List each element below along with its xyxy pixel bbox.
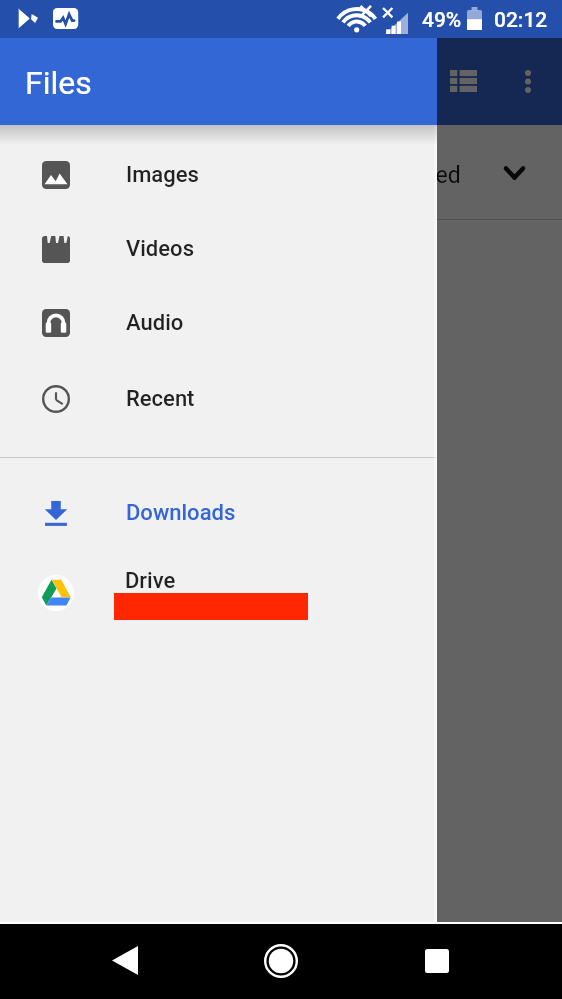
button[interactable]: Images [0, 138, 437, 212]
staticText: Files [25, 64, 92, 102]
button[interactable]: Recent [0, 362, 437, 436]
staticText: Videos [126, 236, 194, 262]
button[interactable]: Downloads [0, 476, 437, 550]
staticText: Drive [125, 568, 176, 594]
button[interactable]: More options [504, 57, 552, 105]
button[interactable]: List view [439, 57, 487, 105]
staticText: Images [126, 162, 199, 188]
button[interactable]: Drive [0, 556, 437, 630]
button[interactable]: Recent apps [397, 922, 477, 999]
staticText: 02:12 [494, 8, 548, 33]
button[interactable]: Videos [0, 212, 437, 286]
staticText: Audio [126, 310, 184, 336]
button[interactable]: Back [85, 922, 165, 999]
staticText: Modified [371, 162, 461, 189]
staticText: Downloads [126, 500, 236, 526]
button[interactable]: Audio [0, 286, 437, 360]
staticText: Recent [126, 386, 195, 412]
button[interactable]: Home [241, 922, 321, 999]
staticText: 49% [422, 8, 462, 33]
